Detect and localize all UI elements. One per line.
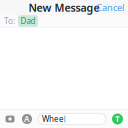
- staticText: New Message: [28, 0, 99, 15]
- staticText: To:: [4, 16, 15, 26]
- button[interactable]: Send: [111, 112, 124, 125]
- staticText: A: [24, 114, 30, 124]
- staticText: Whee: [42, 114, 64, 124]
- staticText: Cancel: [96, 1, 124, 14]
- button[interactable]: Whee: [38, 113, 106, 124]
- button[interactable]: Apps: [21, 113, 33, 125]
- button[interactable]: Cancel: [92, 0, 128, 17]
- button[interactable]: Camera: [4, 113, 16, 125]
- staticText: Dad: [20, 16, 35, 26]
- button[interactable]: To:: [0, 15, 128, 27]
